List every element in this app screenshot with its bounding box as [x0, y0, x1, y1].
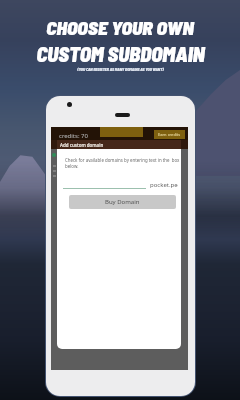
staticText: Check for available domains by entering …	[65, 157, 181, 170]
staticText: Add custom domain	[60, 142, 104, 148]
staticText: Buy Domain	[105, 198, 140, 206]
staticText: credits: 70	[59, 132, 88, 140]
staticText: -	[176, 182, 178, 189]
button[interactable]: Earn credits	[154, 130, 185, 139]
button[interactable]: Buy Domain	[69, 195, 176, 209]
staticText: (YOU CAN REGISTER AS MANY DOMAINS AS YOU…	[77, 67, 164, 72]
staticText: CHOOSE YOUR OWN	[46, 15, 194, 38]
staticText: Earn credits	[158, 132, 181, 137]
staticText: CUSTOM SUBDOMAIN	[36, 41, 205, 66]
staticText: pocket.pe	[150, 181, 178, 189]
